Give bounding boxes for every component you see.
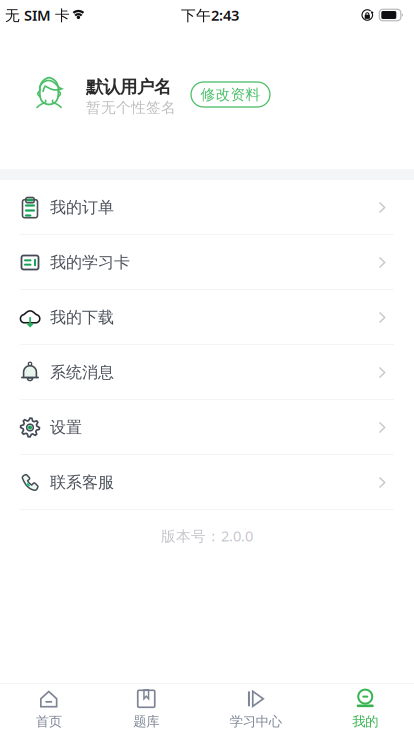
staticText: 我的	[352, 713, 378, 730]
staticText: 我的下载	[50, 308, 114, 327]
staticText: 我的订单	[50, 198, 114, 217]
button[interactable]: 首页	[0, 684, 97, 736]
staticText: 默认用户名	[86, 76, 171, 98]
button[interactable]: 我的下载	[0, 290, 414, 345]
staticText: 无 SIM 卡	[5, 5, 70, 25]
button[interactable]: 题库	[97, 684, 195, 736]
button[interactable]: 我的	[316, 684, 414, 736]
button[interactable]: 修改资料	[191, 82, 270, 107]
button[interactable]: 系统消息	[0, 345, 414, 400]
staticText: 设置	[50, 418, 82, 437]
staticText: 系统消息	[50, 363, 114, 382]
staticText: 修改资料	[200, 85, 260, 103]
staticText: 联系客服	[50, 473, 114, 492]
staticText: 我的学习卡	[50, 253, 130, 272]
staticText: 版本号：2.0.0	[161, 526, 253, 545]
staticText: 暂无个性签名	[86, 99, 176, 117]
button[interactable]: 我的学习卡	[0, 235, 414, 290]
button[interactable]: 联系客服	[0, 455, 414, 510]
button[interactable]: 学习中心	[195, 684, 316, 736]
staticText: 学习中心	[230, 713, 282, 730]
button[interactable]: 我的订单	[0, 180, 414, 235]
staticText: 题库	[133, 713, 159, 730]
button[interactable]: 设置	[0, 400, 414, 455]
staticText: 下午2:43	[181, 5, 239, 25]
staticText: 首页	[36, 713, 62, 730]
